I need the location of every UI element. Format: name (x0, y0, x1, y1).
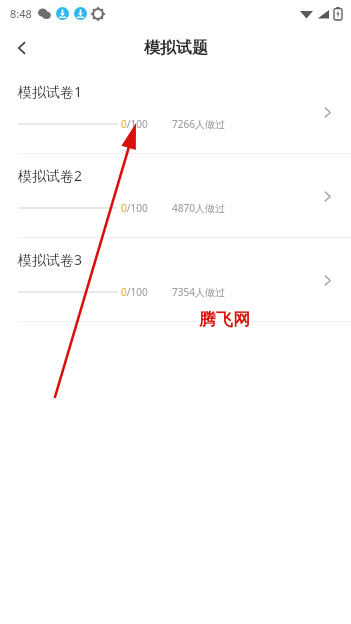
staticText: 腾飞网 (199, 309, 250, 330)
staticText: 8:48 (10, 6, 32, 21)
staticText: 模拟试卷2 (18, 166, 83, 185)
button[interactable]: 模拟试卷3 (0, 238, 351, 321)
staticText: 4870人做过 (172, 201, 225, 215)
staticText: 模拟试卷1 (18, 82, 83, 101)
button[interactable]: 模拟试卷2 (0, 154, 351, 237)
button[interactable]: 模拟试卷1 (0, 70, 351, 153)
staticText: 7266人做过 (172, 117, 225, 131)
staticText: 模拟试题 (144, 38, 208, 58)
button[interactable]: Back (0, 26, 44, 70)
staticText: 0/100 (121, 201, 148, 215)
staticText: 7354人做过 (172, 285, 225, 299)
staticText: 模拟试卷3 (18, 250, 83, 269)
staticText: 0/100 (121, 285, 148, 299)
staticText: 0/100 (121, 117, 148, 131)
